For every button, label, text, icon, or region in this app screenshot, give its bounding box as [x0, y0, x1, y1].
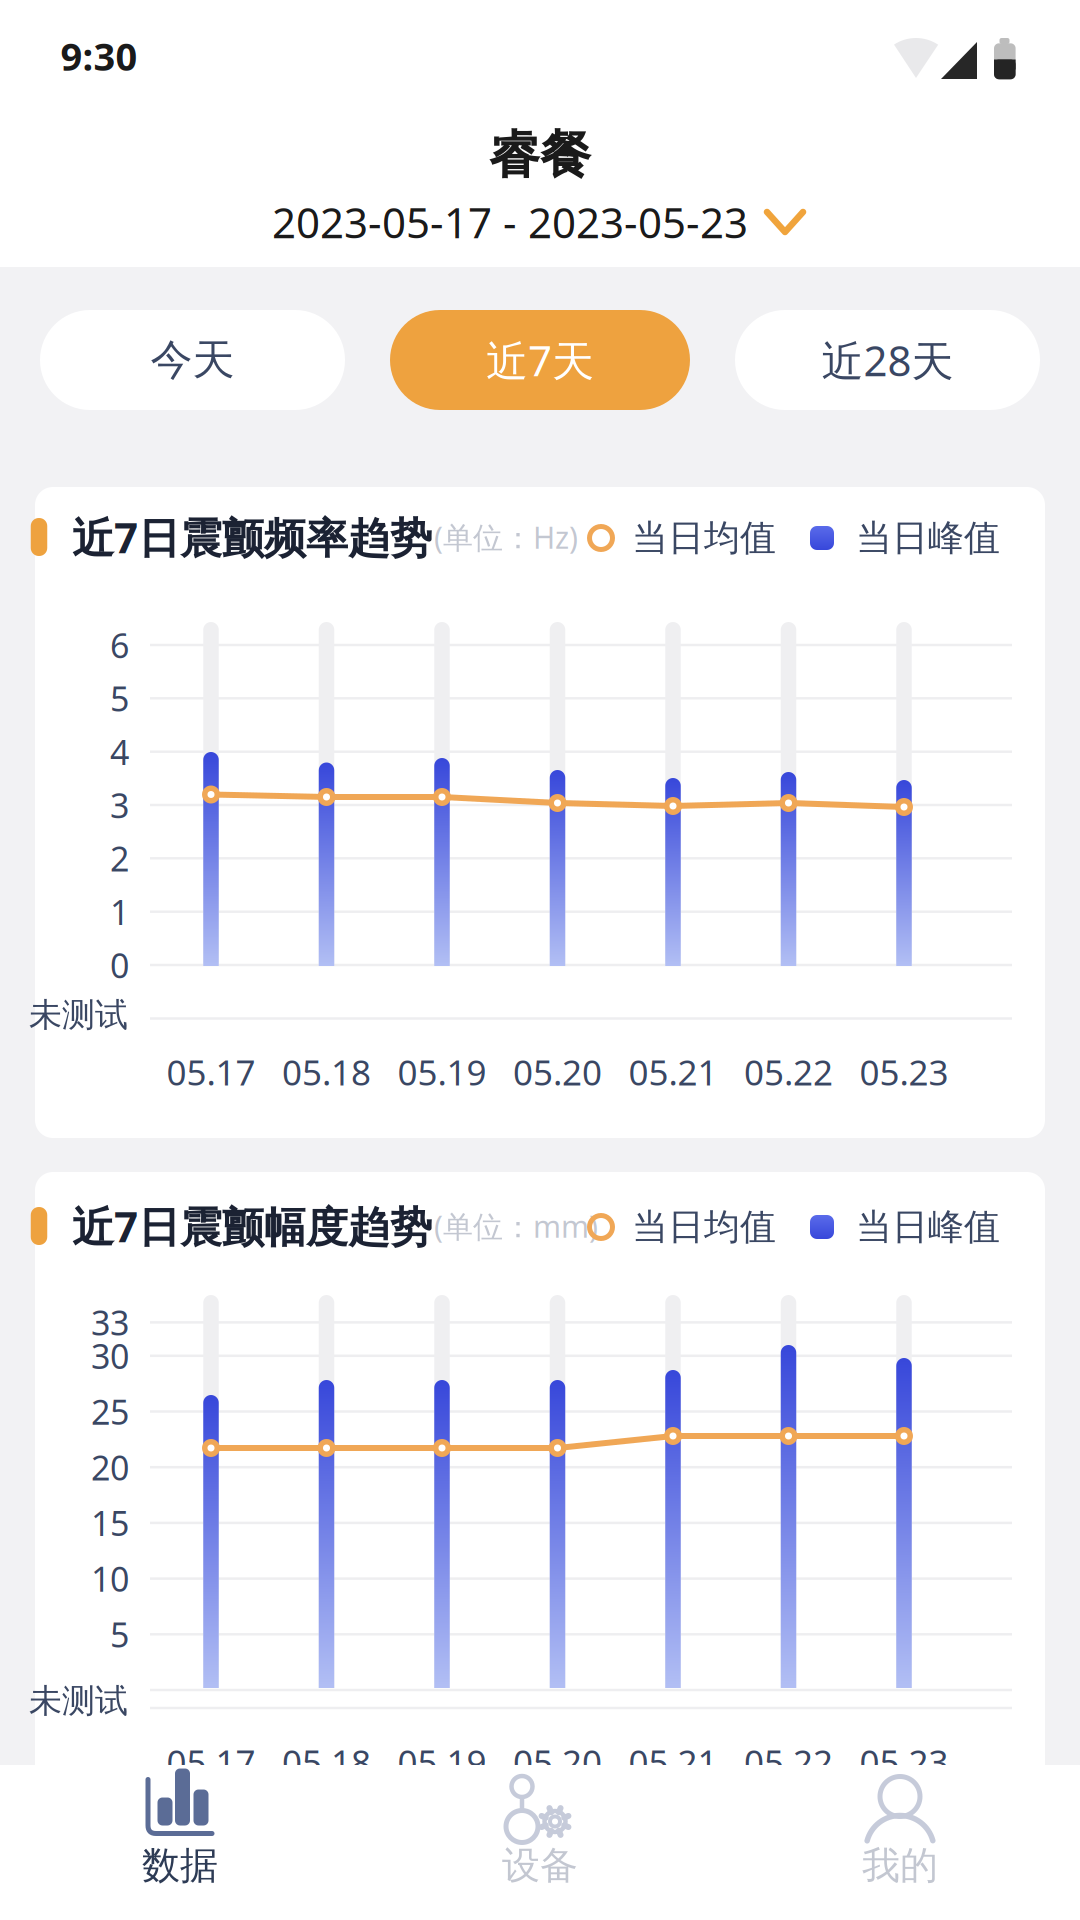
- button[interactable]: 数据: [60, 1770, 300, 1905]
- staticText: 20: [91, 1445, 129, 1490]
- staticText: 0: [110, 942, 129, 988]
- staticText: 05.21: [628, 1739, 717, 1785]
- button[interactable]: 设备: [420, 1770, 660, 1905]
- staticText: 9:30: [60, 31, 137, 81]
- staticText: 05.19: [397, 1049, 486, 1095]
- staticText: 设备: [502, 1842, 578, 1889]
- staticText: 15: [91, 1500, 129, 1545]
- staticText: 25: [91, 1389, 129, 1434]
- staticText: 近7日震颤频率趋势: [72, 509, 432, 565]
- staticText: 当日峰值: [856, 516, 1000, 560]
- staticText: 4: [110, 729, 129, 774]
- staticText: 近28天: [821, 332, 953, 388]
- staticText: 未测试: [29, 995, 128, 1035]
- staticText: 2: [110, 836, 129, 881]
- staticText: 当日均值: [632, 1205, 776, 1249]
- staticText: 5: [110, 676, 129, 721]
- button[interactable]: 我的: [780, 1770, 1020, 1905]
- staticText: 我的: [862, 1842, 938, 1889]
- staticText: 当日均值: [632, 516, 776, 560]
- staticText: 05.22: [744, 1049, 833, 1095]
- staticText: 5: [110, 1612, 129, 1657]
- staticText: 05.22: [744, 1739, 833, 1785]
- staticText: 未测试: [29, 1681, 128, 1721]
- staticText: (单位：mm): [434, 1206, 598, 1246]
- staticText: 05.17: [166, 1739, 255, 1785]
- staticText: 10: [91, 1556, 129, 1601]
- staticText: 数据: [142, 1842, 218, 1889]
- staticText: 05.18: [282, 1049, 371, 1095]
- staticText: 近7天: [486, 332, 594, 388]
- button[interactable]: 近7天: [390, 310, 690, 410]
- staticText: 1: [110, 889, 129, 934]
- staticText: 05.20: [513, 1049, 602, 1095]
- button[interactable]: 今天: [40, 310, 345, 410]
- staticText: 3: [110, 782, 129, 828]
- staticText: 05.17: [166, 1049, 255, 1095]
- staticText: 今天: [150, 334, 234, 386]
- staticText: 当日峰值: [856, 1205, 1000, 1249]
- button[interactable]: 2023-05-17 - 2023-05-23: [245, 199, 811, 245]
- staticText: 6: [110, 622, 129, 668]
- staticText: 2023-05-17 - 2023-05-23: [272, 194, 748, 250]
- staticText: 05.18: [282, 1739, 371, 1785]
- button[interactable]: 近28天: [735, 310, 1040, 410]
- staticText: 30: [91, 1333, 129, 1378]
- staticText: 05.21: [628, 1049, 717, 1095]
- staticText: 近7日震颤幅度趋势: [72, 1198, 432, 1254]
- staticText: 33: [91, 1300, 129, 1345]
- staticText: 睿餐: [489, 124, 591, 186]
- staticText: 05.23: [859, 1739, 948, 1785]
- staticText: (单位：Hz): [434, 517, 578, 557]
- staticText: 05.23: [859, 1049, 948, 1095]
- staticText: 05.19: [397, 1739, 486, 1785]
- staticText: 05.20: [513, 1739, 602, 1785]
